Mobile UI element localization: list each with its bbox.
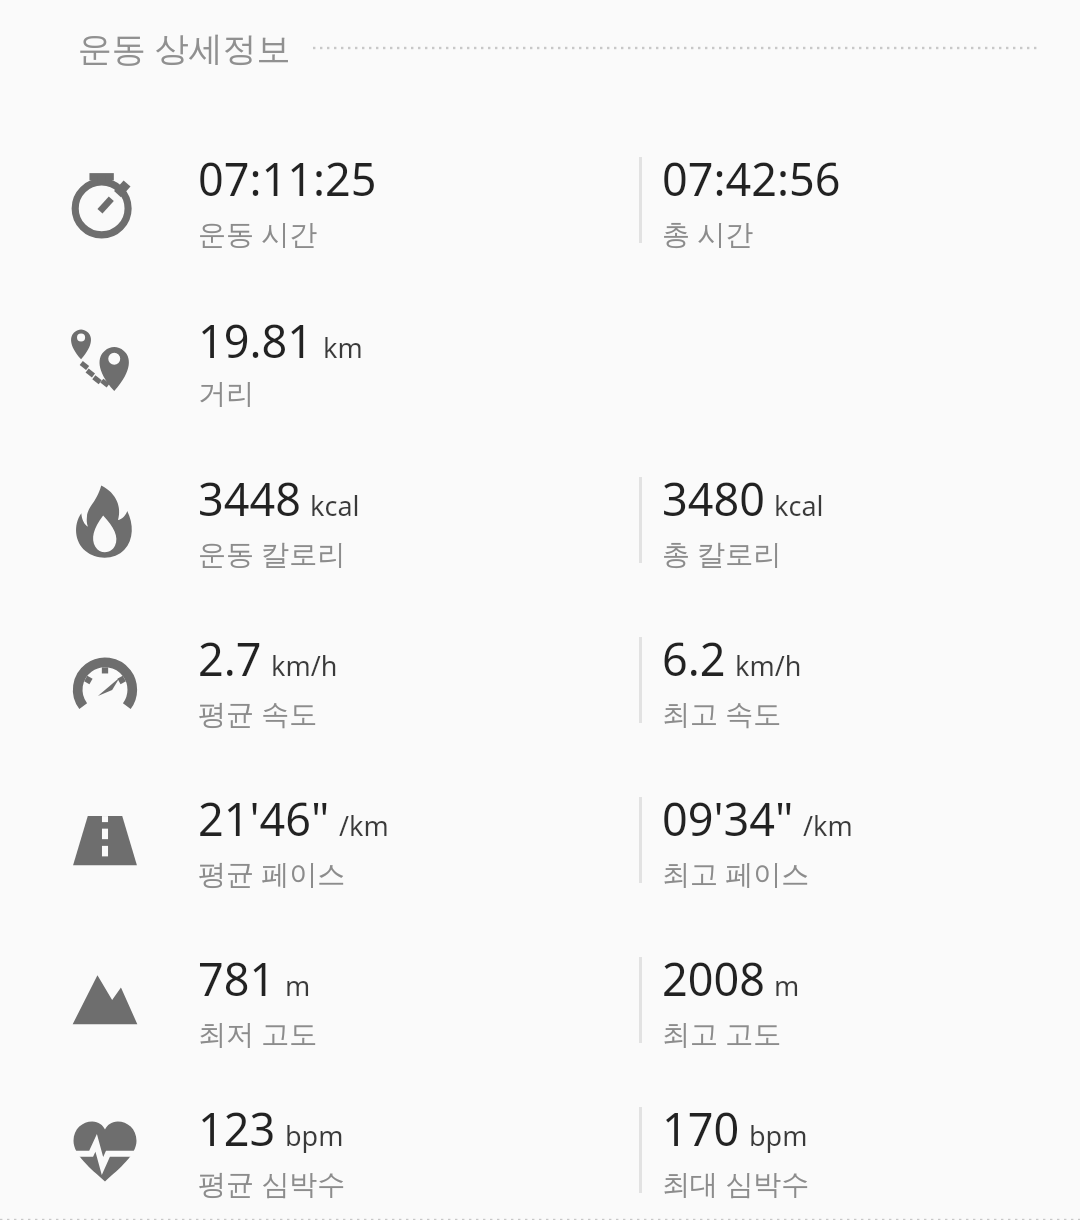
- other: Elevation: [0, 920, 198, 1080]
- staticText: 781: [198, 948, 276, 1009]
- button[interactable]: Elevation: [0, 920, 1080, 1080]
- staticText: 평균 페이스: [198, 854, 346, 892]
- staticText: m: [285, 967, 311, 1004]
- other: Speed: [0, 600, 198, 760]
- staticText: 평균 심박수: [198, 1164, 346, 1202]
- staticText: 거리: [198, 376, 254, 411]
- button[interactable]: Pace: [0, 760, 1080, 920]
- staticText: kcal: [310, 487, 360, 524]
- staticText: m: [774, 967, 800, 1004]
- button[interactable]: Calories: [0, 440, 1080, 600]
- staticText: 19.81: [198, 310, 314, 371]
- staticText: 총 시간: [662, 214, 754, 252]
- other: Distance: [0, 280, 198, 440]
- staticText: 운동 시간: [198, 214, 318, 252]
- staticText: 07:11:25: [198, 148, 377, 209]
- staticText: bpm: [749, 1117, 808, 1154]
- staticText: 최고 고도: [662, 1014, 782, 1052]
- staticText: 최고 페이스: [662, 854, 810, 892]
- staticText: 21'46": [198, 788, 330, 849]
- button[interactable]: Heart rate: [0, 1080, 1080, 1220]
- staticText: 최고 속도: [662, 694, 782, 732]
- staticText: 170: [662, 1098, 740, 1159]
- staticText: /km: [803, 807, 853, 844]
- staticText: 123: [198, 1098, 276, 1159]
- other: Workout duration: [0, 120, 198, 280]
- staticText: 3480: [662, 468, 765, 529]
- other: Pace: [0, 760, 198, 920]
- staticText: 최대 심박수: [662, 1164, 810, 1202]
- staticText: 2.7: [198, 628, 262, 689]
- staticText: kcal: [774, 487, 824, 524]
- staticText: 평균 속도: [198, 694, 318, 732]
- other: Calories: [0, 440, 198, 600]
- staticText: 6.2: [662, 628, 726, 689]
- staticText: 운동 상세정보: [78, 25, 291, 71]
- staticText: km/h: [271, 647, 338, 684]
- staticText: 운동 칼로리: [198, 534, 346, 572]
- button[interactable]: Speed: [0, 600, 1080, 760]
- staticText: km/h: [735, 647, 802, 684]
- staticText: 07:42:56: [662, 148, 841, 209]
- staticText: 최저 고도: [198, 1014, 318, 1052]
- staticText: 3448: [198, 468, 301, 529]
- staticText: 총 칼로리: [662, 534, 782, 572]
- staticText: bpm: [285, 1117, 344, 1154]
- staticText: /km: [339, 807, 389, 844]
- button[interactable]: Workout duration: [0, 120, 1080, 280]
- staticText: 09'34": [662, 788, 794, 849]
- staticText: 2008: [662, 948, 765, 1009]
- other: Heart rate: [0, 1080, 198, 1220]
- staticText: km: [323, 329, 363, 366]
- button[interactable]: Distance: [0, 280, 1080, 440]
